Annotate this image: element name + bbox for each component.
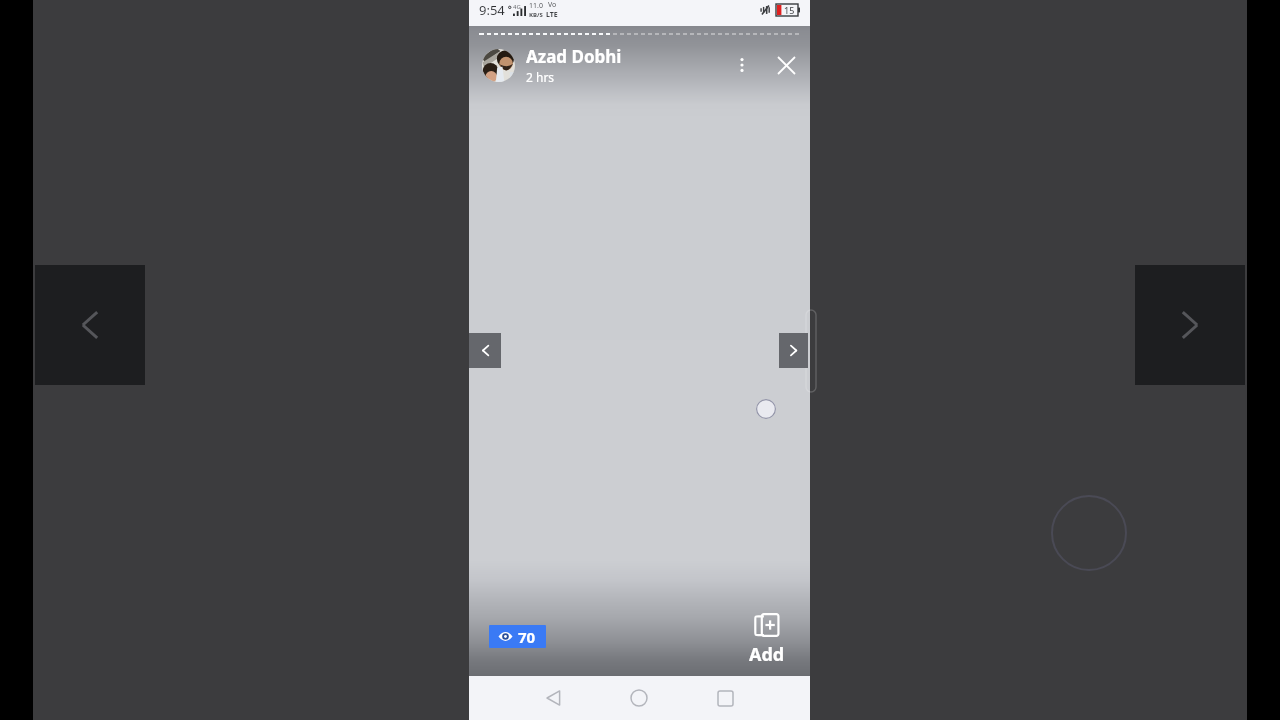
button[interactable]: Add — [739, 609, 795, 671]
button[interactable]: Home — [596, 676, 682, 720]
button[interactable]: Next — [779, 333, 808, 368]
staticText: Azad Dobhi — [526, 45, 622, 68]
staticText: LTE — [546, 10, 558, 20]
staticText: 70 — [518, 627, 536, 647]
staticText: KB/S — [529, 11, 543, 19]
staticText: 15 — [784, 4, 795, 16]
button[interactable]: More options — [728, 51, 756, 79]
button[interactable]: Back — [511, 676, 596, 720]
button[interactable]: Recents — [682, 676, 768, 720]
staticText: 11.0 — [529, 1, 543, 11]
staticText: Add — [749, 642, 785, 667]
staticText: Vo — [548, 0, 557, 10]
button[interactable]: 70 — [489, 625, 546, 648]
staticText: 4G — [513, 3, 521, 11]
staticText: 9:54 — [479, 1, 505, 19]
button[interactable]: Previous — [469, 333, 501, 368]
staticText: 2 hrs — [526, 69, 555, 85]
button[interactable]: Profile photo — [482, 49, 515, 82]
button[interactable]: Close — [772, 51, 800, 79]
